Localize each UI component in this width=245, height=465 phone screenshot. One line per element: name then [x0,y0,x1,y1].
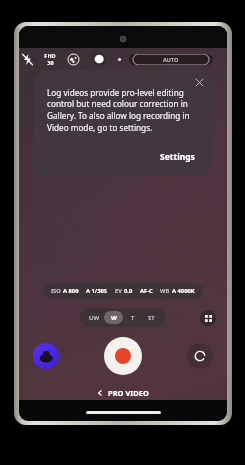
staticText: AF-C [140,287,153,295]
button[interactable]: Settings [156,149,199,165]
staticText: A 800 [63,287,79,295]
staticText: PRO VIDEO [108,388,149,398]
button[interactable]: Flash off [19,51,35,67]
button[interactable]: A 1/30S [86,287,108,295]
button[interactable]: Record video [104,337,142,375]
button[interactable]: AF-C [140,287,153,295]
button[interactable]: ST [142,311,161,324]
button[interactable]: PRO VIDEO [19,384,227,402]
button[interactable]: Close [193,76,205,88]
staticText: T [131,314,135,322]
button[interactable]: T [123,311,142,324]
button[interactable]: AUTO [129,54,213,65]
button[interactable]: Effects [65,51,81,67]
button[interactable]: EV [115,287,133,295]
button[interactable]: Gallery [33,343,59,369]
button[interactable]: WB [160,287,195,295]
button[interactable]: More camera options [200,310,216,326]
button[interactable]: More options [114,54,124,64]
button[interactable]: UW [85,311,104,324]
staticText: UW [89,314,100,322]
staticText: W [111,314,117,322]
staticText: Log videos provide pro-level editing con… [47,87,199,134]
staticText: EV [115,287,122,295]
button[interactable]: ISO [51,287,79,295]
staticText: A 4900K [172,287,195,295]
button[interactable]: FHD [44,52,56,66]
staticText: AUTO [163,56,179,63]
staticText: 30 [47,59,54,66]
staticText: 0.0 [124,287,133,295]
staticText: FHD [44,52,56,59]
staticText: A 1/30S [86,287,108,295]
staticText: WB [160,287,170,295]
button[interactable]: Switch camera [187,343,213,369]
button[interactable]: W [104,311,123,324]
staticText: Settings [160,151,195,163]
staticText: ISO [51,287,61,295]
staticText: ST [148,314,155,322]
button[interactable]: HDR [90,50,108,68]
